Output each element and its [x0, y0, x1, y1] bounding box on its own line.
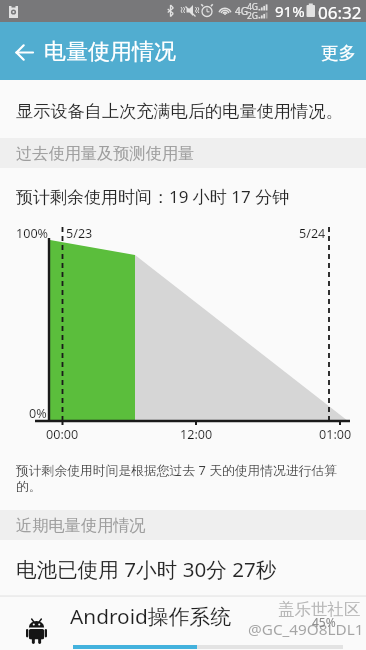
staticText: Android操作系统	[70, 602, 232, 630]
staticText: 电量使用情况	[44, 38, 176, 66]
staticText: 近期电量使用情况	[16, 515, 146, 535]
button[interactable]: 更多	[313, 36, 364, 70]
staticText: 5/24	[299, 225, 326, 242]
button[interactable]: Back	[10, 34, 44, 68]
staticText: 显示设备自上次充满电后的电量使用情况。	[16, 100, 343, 122]
staticText: @GC_49O8LDL1	[248, 619, 364, 640]
staticText: 06:32	[318, 1, 362, 23]
button[interactable]: Android操作系统	[0, 596, 366, 650]
staticText: 00:00	[46, 426, 79, 443]
staticText: 电池已使用 7小时 30分 27秒	[16, 555, 277, 583]
staticText: 12:00	[180, 426, 213, 443]
staticText: 预计剩余使用时间是根据您过去 7 天的使用情况进行估算 的。	[16, 461, 338, 495]
staticText: 100%	[16, 225, 49, 242]
staticText: 91%	[275, 1, 305, 21]
staticText: 4G	[235, 4, 248, 18]
staticText: 4G	[247, 1, 259, 13]
staticText: 盖乐世社区	[278, 599, 361, 620]
staticText: 预计剩余使用时间：19 小时 17 分钟	[16, 185, 290, 208]
staticText: 过去使用量及预测使用量	[16, 143, 195, 163]
staticText: 45%	[312, 614, 336, 630]
staticText: 01:00	[319, 426, 352, 443]
staticText: 0%	[29, 405, 47, 422]
staticText: 5/23	[66, 225, 93, 242]
staticText: 更多	[321, 42, 356, 64]
staticText: 2G	[247, 10, 259, 22]
